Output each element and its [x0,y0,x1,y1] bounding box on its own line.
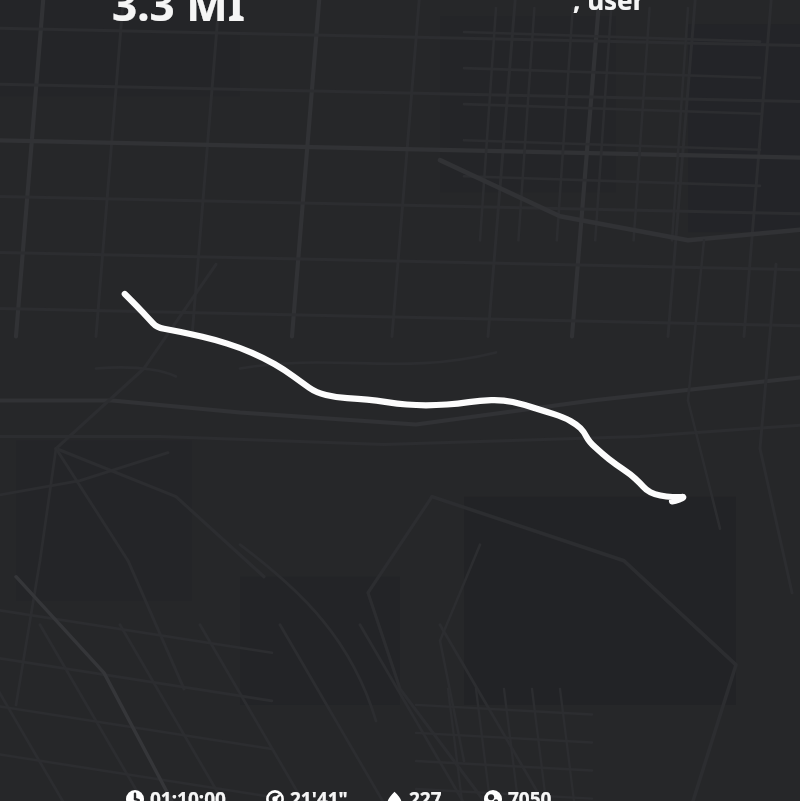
staticText: 01:10:00 [150,786,226,801]
button[interactable]: 3.3 MI [112,0,245,34]
button[interactable]: Duration 1 hour 10 minutes [126,786,226,801]
button[interactable]: 227 calories [386,786,442,801]
staticText: 21'41" [290,786,348,801]
staticText: 7050 [508,786,552,801]
button[interactable]: Average pace 21 minutes 41 seconds [266,786,348,801]
button[interactable]: , user [573,0,645,17]
staticText: 3.3 MI [112,0,245,34]
button[interactable]: 7050 steps [484,786,552,801]
staticText: , user [573,0,645,17]
staticText: 227 [409,786,442,801]
